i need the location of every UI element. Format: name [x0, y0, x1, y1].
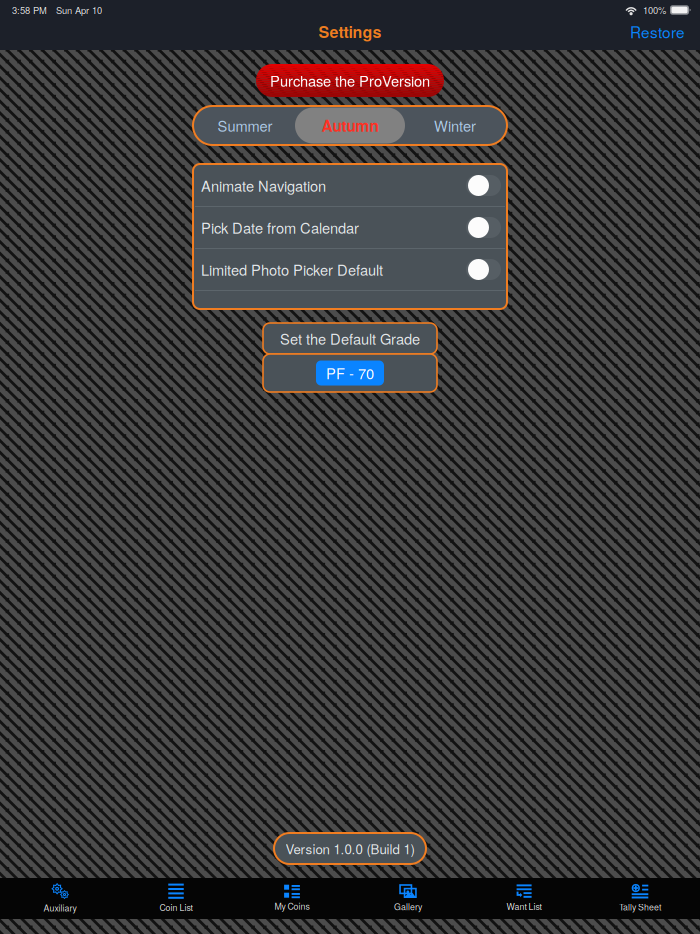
staticText: Autumn: [321, 114, 378, 136]
button[interactable]: Restore: [624, 18, 691, 48]
button[interactable]: Set the Default Grade: [263, 323, 437, 354]
staticText: PF - 70: [326, 362, 374, 383]
staticText: My Coins: [274, 900, 309, 912]
staticText: Gallery: [394, 900, 422, 913]
button[interactable]: Want List: [466, 878, 582, 919]
staticText: Animate Navigation: [201, 175, 326, 196]
button[interactable]: Limited Photo Picker Default: [195, 249, 505, 290]
staticText: 100%: [643, 3, 666, 17]
staticText: Auxiliary: [43, 901, 76, 914]
staticText: Limited Photo Picker Default: [201, 259, 383, 280]
staticText: Tally Sheet: [619, 900, 661, 913]
staticText: Purchase the ProVersion: [270, 70, 430, 91]
staticText: Restore: [630, 20, 685, 42]
staticText: Set the Default Grade: [280, 328, 420, 349]
button[interactable]: Coin List: [118, 878, 234, 919]
button[interactable]: Purchase the ProVersion: [256, 64, 444, 97]
button[interactable]: Autumn: [295, 107, 405, 143]
button[interactable]: PF - 70: [263, 354, 437, 392]
button[interactable]: Summer: [195, 107, 295, 143]
button[interactable]: Winter: [405, 107, 505, 143]
staticText: Winter: [434, 115, 476, 136]
button[interactable]: Version 1.0.0 (Build 1): [274, 833, 426, 864]
staticText: 3:58 PM: [12, 3, 47, 17]
staticText: Pick Date from Calendar: [201, 217, 359, 238]
button[interactable]: Gallery: [350, 878, 466, 919]
button[interactable]: Tally Sheet: [582, 878, 698, 919]
staticText: Want List: [506, 900, 541, 913]
staticText: Version 1.0.0 (Build 1): [285, 839, 414, 858]
button[interactable]: Animate Navigation: [195, 165, 505, 206]
staticText: Coin List: [159, 901, 192, 913]
staticText: Summer: [217, 115, 272, 136]
button[interactable]: My Coins: [234, 878, 350, 919]
button[interactable]: Auxiliary: [2, 878, 118, 919]
staticText: Settings: [318, 20, 381, 43]
staticText: Sun Apr 10: [56, 3, 102, 17]
button[interactable]: Pick Date from Calendar: [195, 207, 505, 248]
